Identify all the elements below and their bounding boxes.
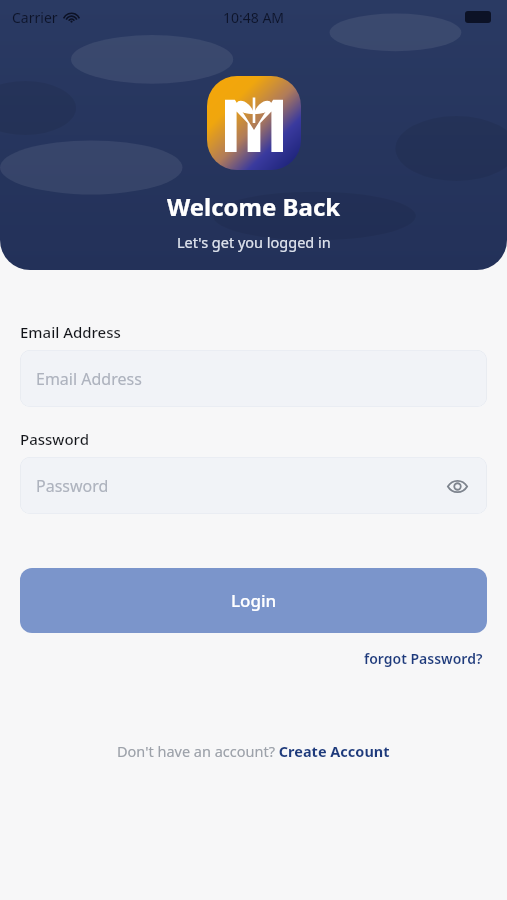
staticText: Email Address (36, 368, 142, 390)
button[interactable]: forgot Password? (360, 645, 487, 672)
button[interactable]: Don't have an account? Create Account (109, 736, 398, 766)
button[interactable]: Email Address (20, 350, 487, 407)
staticText: Welcome Back (167, 190, 341, 223)
button[interactable]: Show password (439, 468, 475, 504)
staticText: Carrier (12, 8, 58, 27)
staticText: 10:48 AM (223, 8, 285, 27)
button[interactable]: Login (20, 568, 487, 633)
staticText: Email Address (20, 322, 121, 342)
staticText: Password (20, 429, 89, 449)
staticText: Password (36, 475, 109, 497)
staticText: Let's get you logged in (177, 232, 331, 252)
staticText: forgot Password? (364, 649, 483, 668)
staticText: Don't have an account? Create Account (117, 741, 390, 761)
staticText: Login (231, 589, 277, 612)
button[interactable]: Password (20, 457, 487, 514)
